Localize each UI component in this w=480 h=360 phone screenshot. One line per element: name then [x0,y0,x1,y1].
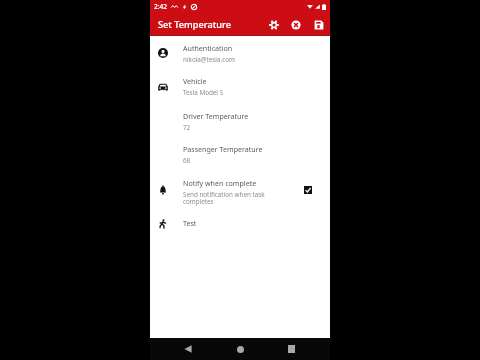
button[interactable] [150,173,330,203]
staticText: Tesla Model S [183,88,224,97]
staticText: 68 [183,156,191,165]
staticText: Authentication [183,43,233,53]
button[interactable] [150,213,330,229]
button[interactable]: Home [230,338,250,360]
staticText: 2:42 [154,2,167,11]
button[interactable]: Save [308,14,330,36]
button[interactable]: Recent apps [281,338,301,360]
button[interactable] [150,39,330,61]
button[interactable] [150,106,330,128]
button[interactable]: Notify when complete toggle [302,184,314,196]
staticText: nikola@tesla.com [183,55,235,64]
button[interactable] [150,72,330,94]
staticText: Test [183,218,197,228]
button[interactable]: Cancel [285,14,307,36]
button[interactable]: Back [178,338,198,360]
staticText: Set Temperature [158,18,231,31]
staticText: Notify when complete [183,178,257,188]
button[interactable] [150,139,330,161]
staticText: 72 [183,123,191,132]
staticText: Send notification when task completes [183,190,278,206]
staticText: Vehicle [183,76,207,86]
staticText: Passenger Temperature [183,144,263,154]
staticText: Driver Temperature [183,111,249,121]
button[interactable]: Settings [263,14,285,36]
